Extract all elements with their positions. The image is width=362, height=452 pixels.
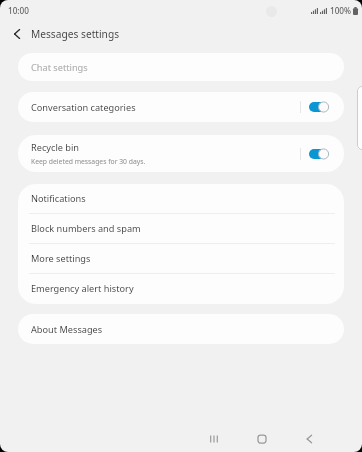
button[interactable]: Notifications <box>18 184 344 214</box>
button[interactable]: Toggle on <box>309 100 329 114</box>
button[interactable]: More settings <box>18 244 344 274</box>
staticText: 100% <box>330 5 352 16</box>
button[interactable]: Recycle bin <box>18 135 344 172</box>
button[interactable]: Recent apps <box>194 421 234 452</box>
staticText: Keep deleted messages for 30 days. <box>31 157 146 166</box>
button[interactable]: Navigate up <box>0 19 34 49</box>
button[interactable]: Conversation categories <box>18 92 344 122</box>
button[interactable]: Block numbers and spam <box>18 214 344 244</box>
staticText: Emergency alert history <box>31 282 134 295</box>
button[interactable]: Toggle on <box>309 147 329 161</box>
staticText: Recycle bin <box>31 141 80 154</box>
staticText: About Messages <box>31 323 103 336</box>
button[interactable]: Back <box>290 421 330 452</box>
staticText: Notifications <box>31 192 86 205</box>
button[interactable]: About Messages <box>18 314 344 344</box>
staticText: Messages settings <box>31 27 120 41</box>
button[interactable]: Emergency alert history <box>18 274 344 304</box>
staticText: Chat settings <box>31 61 88 74</box>
staticText: More settings <box>31 252 91 265</box>
staticText: Conversation categories <box>31 101 136 114</box>
staticText: 10:00 <box>8 5 29 16</box>
staticText: Block numbers and spam <box>31 222 141 235</box>
button[interactable]: Home <box>242 421 282 452</box>
button[interactable]: Chat settings <box>18 53 344 81</box>
